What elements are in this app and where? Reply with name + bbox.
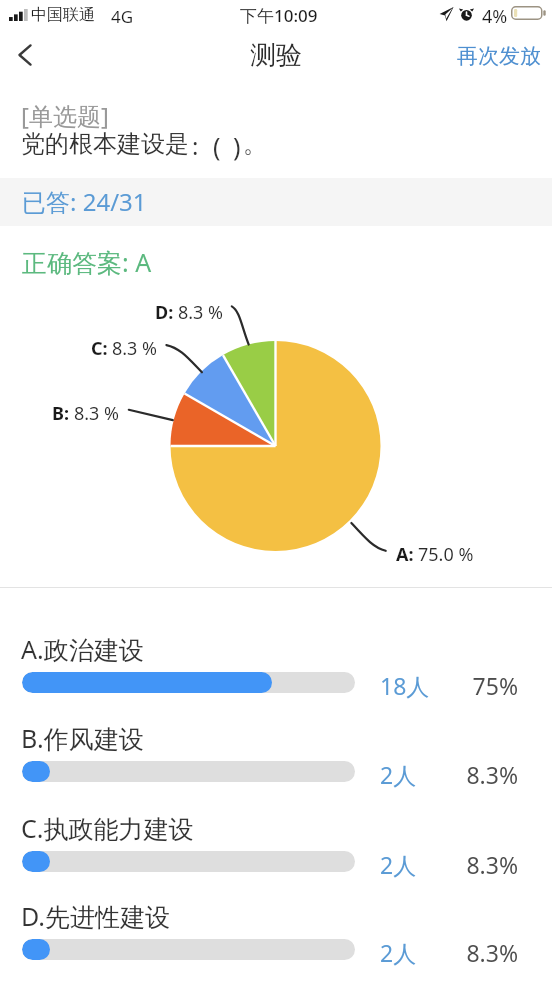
staticText: 75.0 % [418, 542, 474, 567]
staticText: 正确答案: A [22, 245, 152, 279]
button[interactable]: Back [0, 30, 50, 80]
staticText: 8.3 % [112, 336, 158, 361]
button[interactable]: A.政治建设 [0, 633, 552, 718]
staticText: D: [155, 300, 174, 325]
staticText: B.作风建设 [21, 721, 144, 755]
staticText: : [192, 129, 199, 162]
staticText: [单选题] [21, 99, 109, 132]
staticText: 中国联通 [31, 5, 95, 25]
staticText: 8.3% [437, 849, 518, 880]
button[interactable]: 再次发放 [457, 30, 541, 80]
staticText: 4G [111, 5, 134, 28]
staticText: C.执政能力建设 [21, 811, 194, 845]
staticText: 2人 [380, 849, 417, 880]
staticText: 。 [243, 129, 267, 159]
staticText: 再次发放 [457, 43, 541, 69]
staticText: 2人 [380, 759, 417, 790]
staticText: 75% [437, 670, 518, 701]
button[interactable]: B.作风建设 [0, 722, 552, 807]
staticText: 4% [482, 4, 508, 29]
button[interactable]: C.执政能力建设 [0, 812, 552, 897]
staticText: C: [91, 336, 108, 361]
staticText: 党的根本建设是 [21, 129, 189, 159]
staticText: D.先进性建设 [21, 899, 170, 933]
button[interactable]: D.先进性建设 [0, 900, 552, 981]
staticText: A: [396, 542, 414, 567]
staticText: 测验 [250, 39, 302, 72]
staticText: 8.3 % [74, 401, 120, 426]
staticText: 下午10:09 [240, 4, 318, 27]
staticText: 已答: 24/31 [22, 185, 147, 218]
staticText: 18人 [380, 670, 430, 701]
staticText: B: [52, 401, 70, 426]
staticText: 8.3% [437, 937, 518, 968]
staticText: A.政治建设 [21, 632, 144, 666]
staticText: ) [233, 129, 241, 163]
staticText: 8.3 % [178, 300, 224, 325]
staticText: 2人 [380, 937, 417, 968]
staticText: 8.3% [437, 759, 518, 790]
staticText: ( [213, 129, 221, 163]
